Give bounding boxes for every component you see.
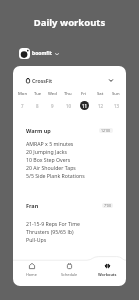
- staticText: Schedule: [61, 272, 78, 277]
- staticText: Mon: [18, 91, 28, 97]
- staticText: 10: [66, 103, 72, 109]
- staticText: 20 Jumping Jacks: [26, 148, 68, 156]
- staticText: Sun: [112, 91, 120, 97]
- button[interactable]: Tue: [30, 91, 45, 110]
- staticText: 11: [82, 103, 88, 109]
- button[interactable]: Mon: [15, 91, 30, 110]
- button[interactable]: Sat: [92, 91, 108, 110]
- staticText: 7'00: [104, 203, 111, 208]
- staticText: 8: [36, 103, 39, 109]
- other: Schedule: [67, 263, 72, 269]
- button[interactable]: CrossFit: [26, 77, 113, 84]
- staticText: Workouts: [98, 272, 117, 277]
- staticText: Home: [26, 272, 37, 277]
- staticText: 10 Box Step Overs: [26, 156, 71, 164]
- staticText: boomfit: [32, 50, 52, 57]
- staticText: Thu: [64, 91, 72, 97]
- staticText: Daily workouts: [0, 16, 139, 29]
- staticText: Fri: [81, 91, 87, 97]
- staticText: Wed: [48, 91, 57, 97]
- staticText: CrossFit: [32, 77, 53, 84]
- staticText: 12'00: [101, 128, 111, 133]
- staticText: 9: [51, 103, 54, 109]
- staticText: Fran: [26, 202, 39, 209]
- other: Workouts: [105, 263, 110, 269]
- button[interactable]: 7'00: [102, 203, 113, 208]
- staticText: Pull-Ups: [26, 236, 47, 244]
- staticText: 21-15-9 Reps For Time: [26, 220, 81, 228]
- staticText: 13: [114, 103, 120, 109]
- staticText: Sat: [97, 91, 104, 97]
- staticText: 20 Air Shoulder Taps: [26, 164, 76, 172]
- button[interactable]: 12'00: [99, 128, 113, 133]
- staticText: AMRAP x 5 minutes: [26, 140, 74, 148]
- staticText: 12: [98, 103, 104, 109]
- staticText: Warm up: [26, 127, 51, 134]
- button[interactable]: Home: [13, 263, 50, 277]
- button[interactable]: Schedule: [50, 263, 88, 277]
- button[interactable]: boomfit: [19, 48, 59, 59]
- staticText: 5/5 Side Plank Rotations: [26, 172, 85, 180]
- staticText: Tue: [34, 91, 42, 97]
- other: Home: [29, 263, 35, 269]
- staticText: Thrusters (95/65 lb): [26, 228, 74, 236]
- button[interactable]: Sun: [108, 91, 124, 110]
- button[interactable]: Fri: [76, 91, 92, 110]
- button[interactable]: Wed: [45, 91, 60, 110]
- staticText: 7: [21, 103, 24, 109]
- button[interactable]: Workouts: [88, 263, 126, 277]
- button[interactable]: Thu: [60, 91, 76, 110]
